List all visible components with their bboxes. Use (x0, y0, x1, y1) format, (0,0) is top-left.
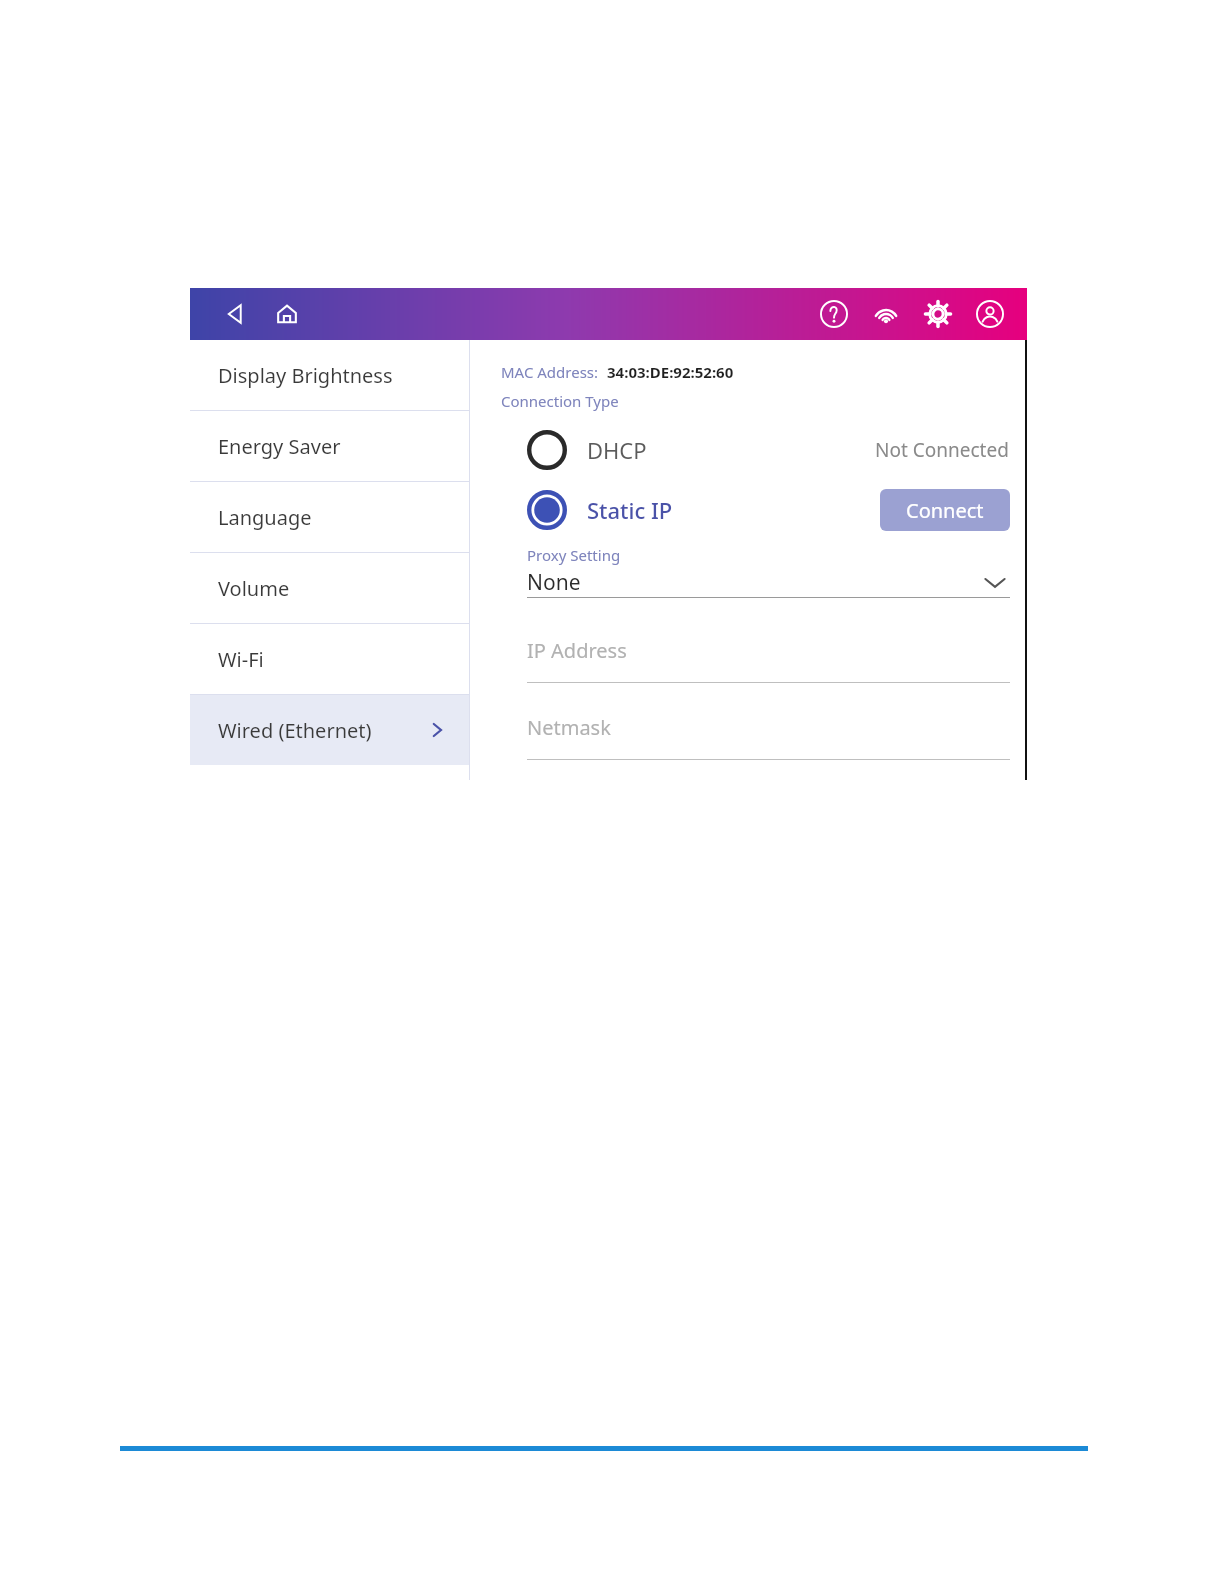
staticText: DHCP (587, 435, 647, 465)
staticText: Language (218, 504, 312, 531)
staticText: MAC Address: (501, 362, 599, 382)
button[interactable]: IP Address (527, 632, 1010, 683)
button[interactable]: Wired (Ethernet) (190, 695, 469, 765)
staticText: IP Address (527, 637, 627, 664)
staticText: Wi-Fi (218, 646, 264, 673)
button[interactable]: Settings (921, 297, 955, 331)
button[interactable]: Help (817, 297, 851, 331)
button[interactable]: Energy Saver (190, 411, 469, 481)
button[interactable]: Netmask (527, 709, 1010, 760)
staticText: Display Brightness (218, 362, 393, 389)
button[interactable]: Static IP (501, 490, 673, 530)
staticText: Energy Saver (218, 433, 341, 460)
button[interactable]: Volume (190, 553, 469, 623)
button[interactable]: Account (973, 297, 1007, 331)
staticText: Connection Type (501, 391, 619, 411)
staticText: Volume (218, 575, 290, 602)
staticText: Proxy Setting (527, 545, 621, 565)
staticText: Connect (906, 497, 984, 524)
button[interactable]: Proxy Setting (527, 545, 1010, 598)
staticText: None (527, 568, 581, 597)
staticText: 34:03:DE:92:52:60 (607, 362, 734, 382)
staticText: Static IP (587, 495, 673, 525)
button[interactable]: Wi-Fi (190, 624, 469, 694)
button[interactable]: Wi-Fi (869, 297, 903, 331)
staticText: Wired (Ethernet) (218, 717, 372, 744)
button[interactable]: Back (218, 297, 252, 331)
staticText: Not Connected (875, 437, 1009, 463)
button[interactable]: Home (270, 297, 304, 331)
button[interactable]: Language (190, 482, 469, 552)
button[interactable]: DHCP (501, 430, 647, 470)
button[interactable]: Display Brightness (190, 340, 469, 410)
staticText: Netmask (527, 714, 611, 741)
button[interactable]: Connect (880, 489, 1010, 531)
